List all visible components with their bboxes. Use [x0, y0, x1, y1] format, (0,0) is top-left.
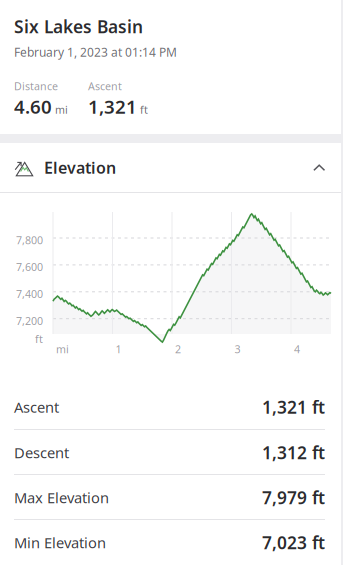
staticText: 1,321 ft: [262, 395, 325, 418]
button[interactable]: Ascent: [0, 384, 341, 430]
staticText: ft: [140, 102, 148, 117]
staticText: Six Lakes Basin: [14, 15, 143, 38]
staticText: Distance: [14, 79, 58, 93]
staticText: 1: [115, 342, 121, 356]
button[interactable]: Descent: [0, 430, 341, 475]
staticText: 7,800: [16, 233, 43, 247]
button[interactable]: Min Elevation: [0, 520, 341, 565]
staticText: 7,979 ft: [262, 486, 325, 509]
staticText: Min Elevation: [14, 533, 106, 552]
staticText: 4: [294, 342, 300, 356]
staticText: 1,321: [88, 94, 137, 119]
staticText: ft: [35, 332, 43, 346]
staticText: mi: [55, 102, 68, 117]
staticText: mi: [56, 342, 69, 356]
button[interactable]: Max Elevation: [0, 475, 341, 520]
staticText: 3: [234, 342, 240, 356]
staticText: Max Elevation: [14, 488, 109, 507]
staticText: 7,023 ft: [262, 531, 325, 554]
staticText: Ascent: [14, 397, 59, 417]
staticText: 7,600: [16, 260, 43, 274]
staticText: Ascent: [88, 79, 122, 93]
staticText: Elevation: [44, 157, 116, 178]
button[interactable]: Elevation: [0, 143, 341, 192]
staticText: February 1, 2023 at 01:14 PM: [14, 44, 177, 60]
staticText: Descent: [14, 443, 69, 462]
staticText: 7,400: [16, 287, 43, 301]
staticText: 2: [175, 342, 181, 356]
staticText: 4.60: [14, 94, 52, 119]
staticText: 7,200: [16, 314, 43, 328]
staticText: 1,312 ft: [262, 441, 325, 464]
